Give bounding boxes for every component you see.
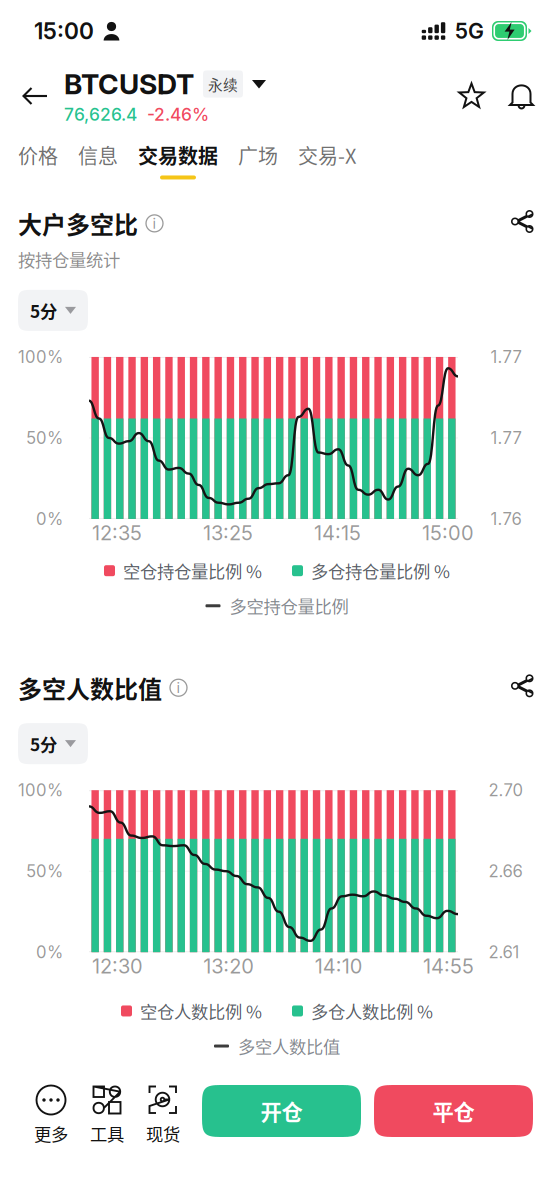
staticText: 价格 [18,140,58,169]
staticText: 14:55 [423,954,474,978]
staticText: 14:15 [314,521,361,545]
staticText: 50% [26,861,63,881]
staticText: 2.61 [488,942,519,962]
staticText: 工具 [90,1121,124,1146]
staticText: 广场 [238,140,278,169]
button[interactable]: Alerts [497,63,554,129]
button[interactable]: 更多 [23,1085,79,1146]
button[interactable]: 交易数据 [128,134,228,179]
staticText: 空仓人数比例 % [140,998,262,1023]
staticText: 76,626.4 [64,104,137,125]
staticText: 1.77 [490,347,521,367]
staticText: 交易-X [298,140,356,169]
button[interactable]: Back [0,63,64,129]
staticText: 5分 [30,731,57,756]
staticText: 现货 [146,1121,180,1146]
staticText: 14:10 [315,954,363,978]
staticText: 5G [455,18,484,44]
staticText: 2.70 [488,780,523,800]
staticText: 空仓持仓量比例 % [123,558,262,583]
button[interactable]: 5分 [18,723,88,764]
staticText: 0% [36,509,63,529]
staticText: 100% [18,347,63,367]
staticText: 更多 [34,1121,68,1146]
staticText: -2.46% [147,104,209,125]
staticText: 多仓人数比例 % [311,998,433,1023]
button[interactable]: Favourite [446,63,497,129]
staticText: 15:00 [34,17,94,45]
staticText: 交易数据 [138,140,218,169]
staticText: 100% [18,780,63,800]
staticText: 按持仓量统计 [18,247,120,272]
staticText: 信息 [78,140,118,169]
staticText: 多仓持仓量比例 % [311,558,450,583]
staticText: 50% [26,428,63,448]
staticText: 15:00 [422,521,474,545]
staticText: 平仓 [432,1096,474,1126]
staticText: 12:30 [92,954,143,978]
button[interactable]: 开仓 [202,1085,361,1137]
button[interactable]: 平仓 [374,1085,533,1137]
button[interactable]: 价格 [8,134,68,179]
staticText: 多空人数比值 [18,670,162,705]
staticText: 大户多空比 [18,206,138,241]
staticText: BTCUSDT [64,67,194,101]
staticText: 0% [36,942,63,962]
staticText: 13:20 [203,954,254,978]
button[interactable]: 工具 [79,1085,135,1146]
staticText: i [152,214,156,232]
button[interactable]: 5分 [18,290,88,331]
staticText: 多空人数比值 [238,1033,340,1059]
staticText: 多空持仓量比例 [229,593,348,618]
staticText: 永续 [208,73,238,95]
staticText: 5分 [30,298,57,323]
button[interactable]: Share [501,670,542,695]
button[interactable]: 信息 [68,134,128,179]
staticText: 13:25 [203,521,253,545]
button[interactable]: Share [501,206,542,231]
staticText: 2.66 [488,861,522,881]
staticText: 12:35 [92,521,142,545]
staticText: 1.76 [490,509,521,529]
staticText: 开仓 [260,1096,302,1126]
staticText: i [176,679,180,696]
staticText: 1.77 [490,428,521,448]
button[interactable]: 现货 [135,1085,191,1146]
button[interactable]: 交易-X [288,134,366,179]
button[interactable]: 广场 [228,134,288,179]
